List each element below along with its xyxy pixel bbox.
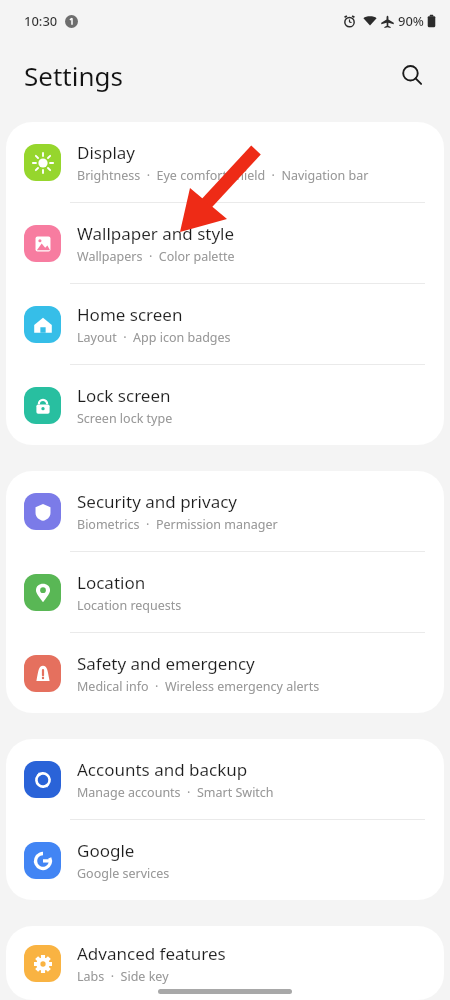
staticText: 90% (398, 12, 424, 30)
staticText: Advanced features (77, 942, 226, 965)
button[interactable]: Security and privacy (6, 471, 444, 551)
staticText: Screen lock type (77, 410, 173, 427)
button[interactable]: Google (6, 820, 444, 900)
staticText: Biometrics · Permission manager (77, 516, 278, 533)
staticText: Security and privacy (77, 490, 238, 513)
staticText: Layout · App icon badges (77, 329, 231, 346)
staticText: Wallpapers · Color palette (77, 248, 235, 265)
staticText: Location (77, 571, 146, 594)
staticText: Accounts and backup (77, 758, 248, 781)
staticText: Google services (77, 865, 170, 882)
staticText: Medical info · Wireless emergency alerts (77, 678, 320, 695)
staticText: 10:30 (24, 12, 58, 30)
staticText: Lock screen (77, 384, 171, 407)
button[interactable]: Location (6, 552, 444, 632)
staticText: Brightness · Eye comfort shield · Naviga… (77, 167, 369, 184)
button[interactable]: Home screen (6, 284, 444, 364)
staticText: Manage accounts · Smart Switch (77, 784, 274, 801)
staticText: Location requests (77, 597, 182, 614)
staticText: Labs · Side key (77, 968, 169, 985)
button[interactable]: Lock screen (6, 365, 444, 445)
button[interactable]: Wallpaper and style (6, 203, 444, 283)
button[interactable]: Advanced features (6, 926, 444, 1000)
button[interactable]: Accounts and backup (6, 739, 444, 819)
button[interactable]: Safety and emergency (6, 633, 444, 713)
staticText: Display (77, 141, 135, 164)
staticText: Safety and emergency (77, 652, 255, 675)
staticText: Wallpaper and style (77, 222, 235, 245)
staticText: Home screen (77, 303, 183, 326)
staticText: Settings (24, 58, 123, 93)
button[interactable]: Display (6, 122, 444, 202)
staticText: Google (77, 839, 135, 862)
button[interactable]: Search (390, 53, 434, 97)
